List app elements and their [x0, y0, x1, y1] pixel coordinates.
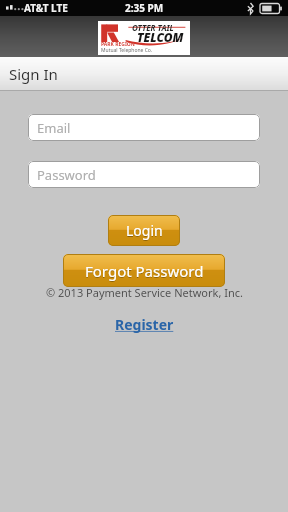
staticText: Mutual Telephone Co. [101, 47, 153, 54]
staticText: Email [37, 119, 71, 137]
staticText: Password [37, 166, 96, 184]
staticText: Forgot Password [85, 261, 204, 281]
staticText: Sign In [9, 64, 58, 84]
staticText: LTE [51, 1, 68, 15]
staticText: Login [126, 221, 163, 240]
staticText: TELCOM [137, 29, 184, 45]
button[interactable]: Register [111, 313, 178, 336]
button[interactable]: Forgot Password [63, 254, 225, 287]
button[interactable]: Login [108, 215, 180, 246]
button[interactable]: Password [28, 161, 260, 188]
staticText: Login [126, 222, 163, 241]
staticText: © 2013 Payment Service Network, Inc. [46, 285, 243, 300]
staticText: Register [115, 315, 174, 334]
button[interactable]: Email [28, 114, 260, 141]
staticText: PARK REGION [101, 41, 135, 48]
staticText: OTTER TAIL [132, 22, 174, 33]
staticText: Forgot Password [85, 262, 204, 282]
staticText: 2:35 PM [125, 1, 164, 15]
staticText: AT&T [24, 1, 49, 15]
